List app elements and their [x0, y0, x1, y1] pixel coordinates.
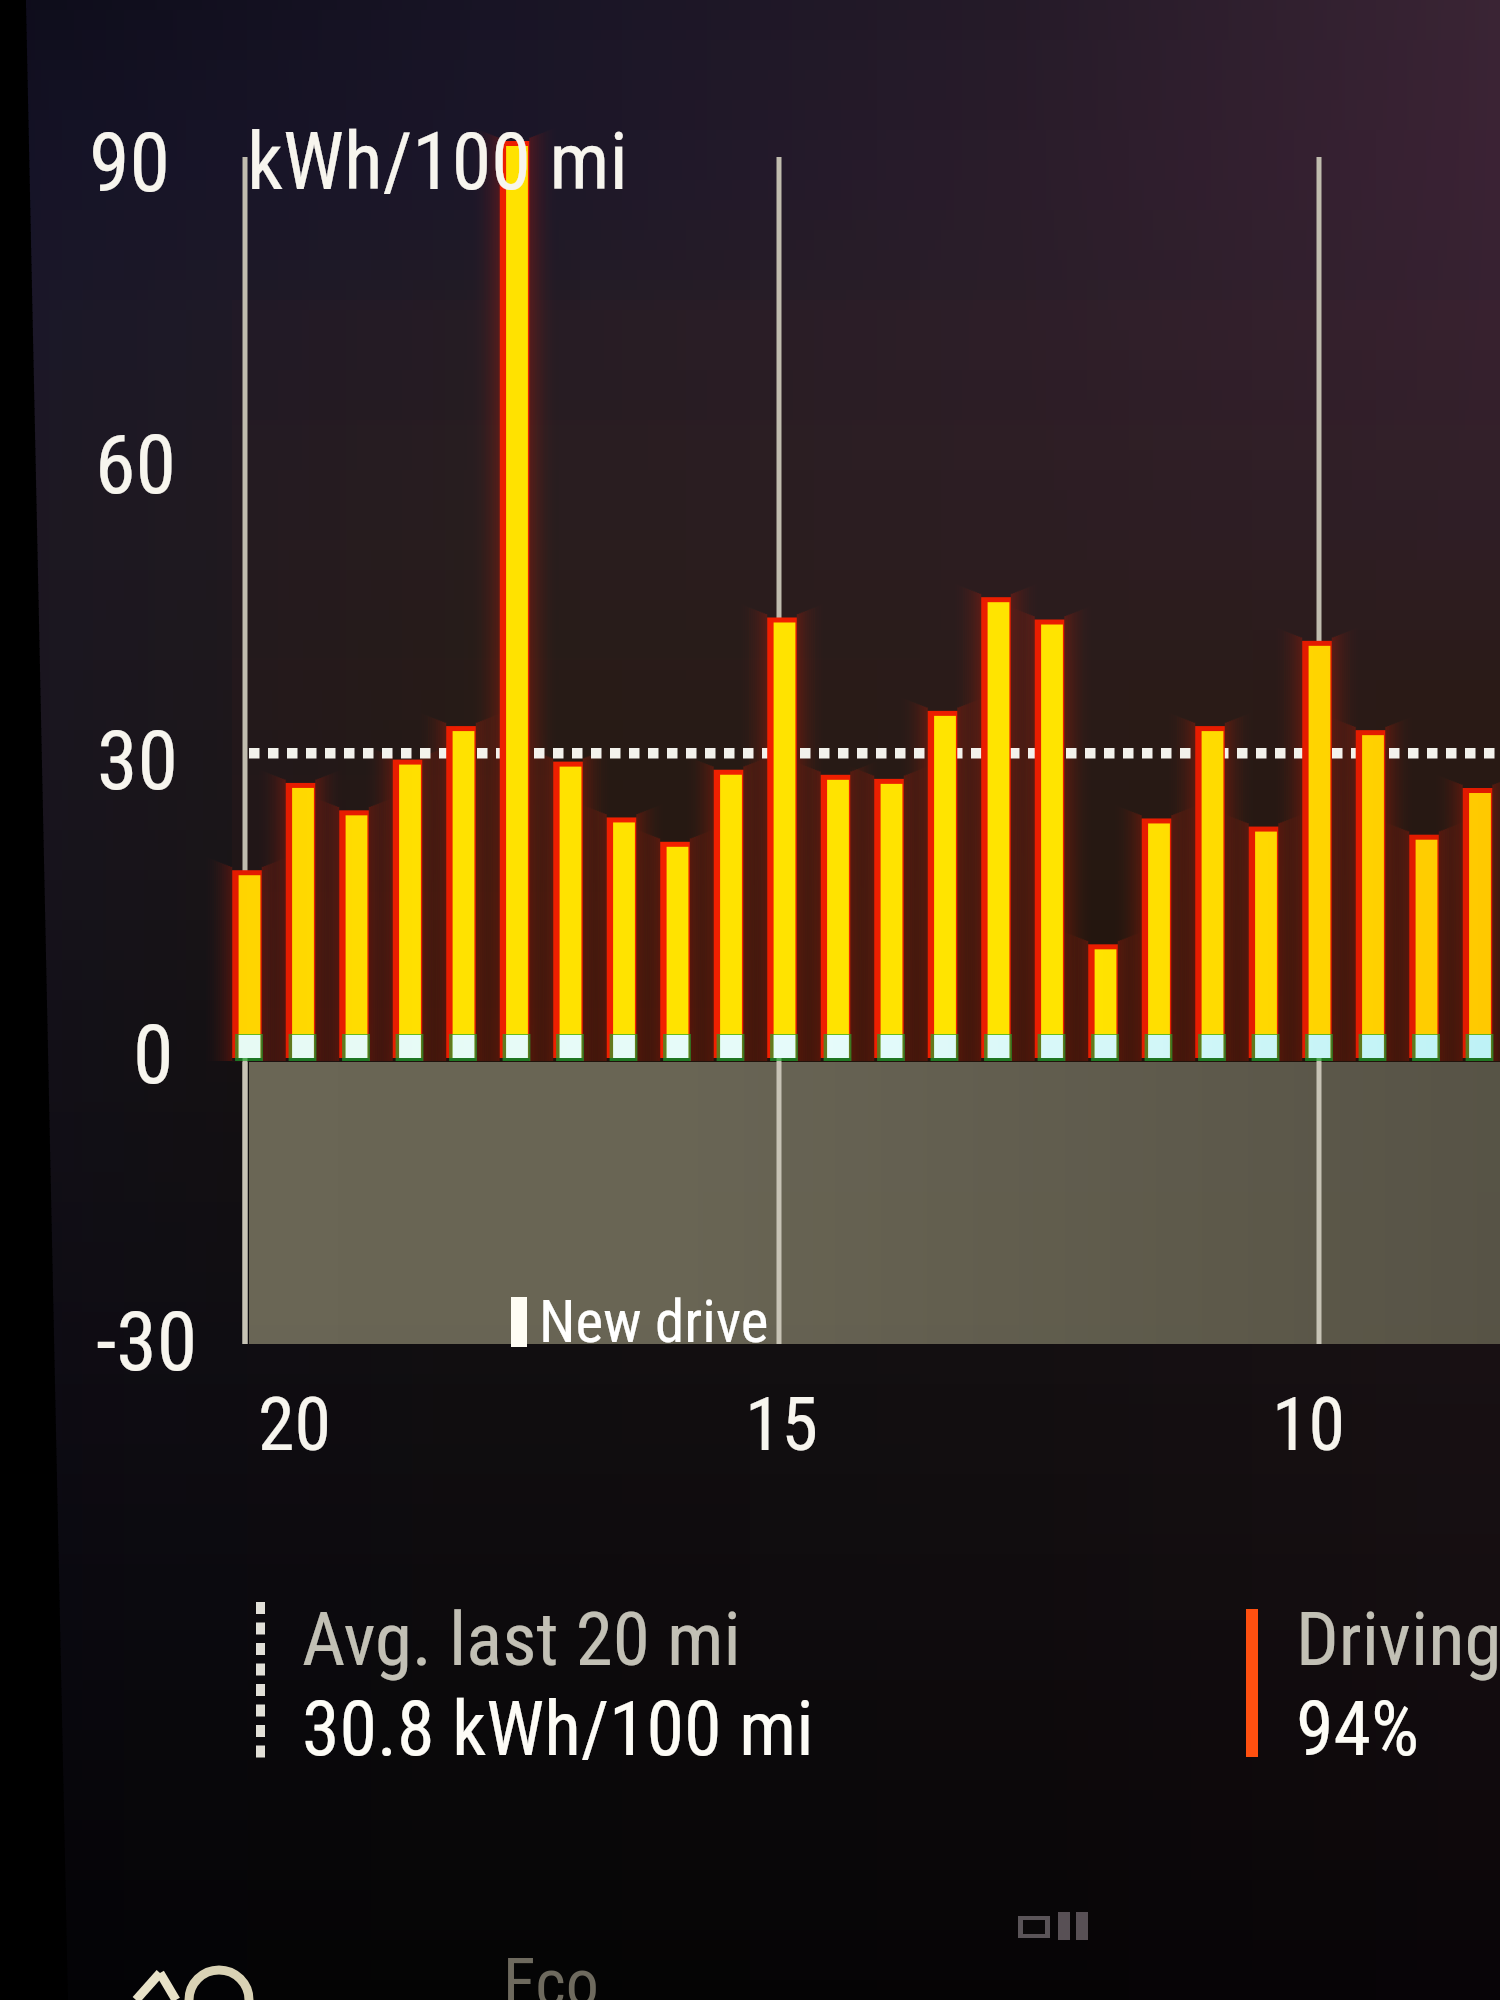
button[interactable]: Energy consumption chart	[0, 0, 1500, 2000]
